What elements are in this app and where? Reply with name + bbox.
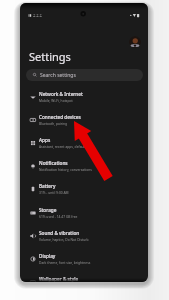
staticText: Apps [39,137,51,143]
button[interactable]: Display [20,246,148,269]
staticText: Mobile, Wi-Fi, hotspot [39,98,73,102]
staticText: 61% used - 14.47 GB free [39,214,78,218]
staticText: Storage [39,207,57,213]
staticText: Assistant, recent apps, default apps [39,144,94,148]
button[interactable]: Notifications [20,153,148,176]
button[interactable]: Account [129,36,141,48]
staticText: Notification history, conversations [39,167,92,171]
button[interactable]: Network & Internet [20,84,148,107]
staticText: Bluetooth, pairing [39,121,68,125]
staticText: Sound & vibration [39,230,80,236]
button[interactable]: Wallpaper & style [20,269,148,282]
staticText: Display [39,253,56,259]
button[interactable]: Sound & vibration [20,223,148,246]
staticText: Wallpaper & style [39,276,79,282]
button[interactable]: Search settings [26,69,143,81]
staticText: Battery [39,183,56,189]
button[interactable]: Connected devices [20,107,148,130]
staticText: Search settings [40,72,76,79]
button[interactable]: Apps [20,130,148,153]
button[interactable]: Storage [20,200,148,223]
staticText: Notifications [39,160,68,166]
staticText: 31% - until 9:00 AM [39,190,69,194]
button[interactable]: Battery [20,176,148,199]
staticText: Volume, haptics, Do Not Disturb [39,237,89,241]
staticText: Dark theme, font size, brightness [39,260,91,264]
staticText: Connected devices [39,114,81,120]
staticText: Network & Internet [39,91,83,97]
staticText: Settings [29,49,71,64]
